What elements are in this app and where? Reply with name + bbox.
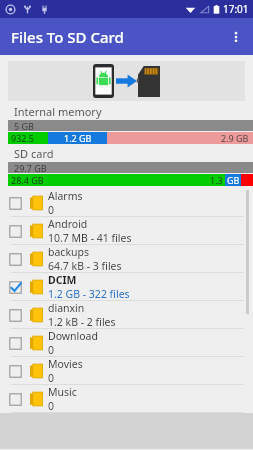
staticText: Movies xyxy=(48,357,83,371)
staticText: Music xyxy=(48,385,77,399)
button[interactable]: Select DCIM xyxy=(0,273,253,301)
staticText: 0 xyxy=(48,371,55,384)
staticText: Internal memory xyxy=(14,104,102,119)
staticText: Download xyxy=(48,329,98,343)
button[interactable]: Select DCIM xyxy=(4,276,26,298)
staticText: dianxin xyxy=(48,301,85,315)
staticText: 64.7 kB - 3 files xyxy=(48,259,122,272)
staticText: 1.2 GB - 322 files xyxy=(48,287,130,300)
staticText: 0 xyxy=(48,343,55,356)
staticText: 0 xyxy=(48,399,55,412)
staticText: Alarms xyxy=(48,189,83,203)
staticText: Android xyxy=(48,217,88,231)
staticText: Files To SD Card xyxy=(11,27,124,47)
button[interactable]: Select Music xyxy=(4,388,26,410)
button[interactable]: More options xyxy=(219,20,253,54)
button[interactable]: Select Alarms xyxy=(4,192,26,214)
staticText: 17:01 xyxy=(223,2,249,16)
button[interactable]: Select backups xyxy=(0,245,253,273)
staticText: 932.5 MB xyxy=(11,132,48,144)
staticText: backups xyxy=(48,245,89,259)
button[interactable]: Select Android xyxy=(0,217,253,245)
staticText: 28.4 GB xyxy=(11,174,44,186)
button[interactable]: Select Movies xyxy=(0,357,253,385)
button[interactable]: Select Movies xyxy=(4,360,26,382)
staticText: GB xyxy=(227,174,240,186)
staticText: DCIM xyxy=(48,273,77,287)
button[interactable]: Select Alarms xyxy=(0,189,253,217)
staticText: 1.2 GB xyxy=(64,132,92,144)
staticText: 0 xyxy=(48,203,55,216)
staticText: 2.9 GB xyxy=(221,132,249,144)
button[interactable]: Select dianxin xyxy=(0,301,253,329)
button[interactable]: Select Music xyxy=(0,385,253,413)
staticText: SD card xyxy=(14,146,54,161)
staticText: 5 GB xyxy=(14,120,34,131)
button[interactable]: Select Download xyxy=(0,329,253,357)
staticText: 29.7 GB xyxy=(14,162,47,173)
button[interactable]: Copy files from phone to SD card xyxy=(8,61,245,101)
staticText: 10.7 MB - 41 files xyxy=(48,231,132,244)
staticText: 1.2 kB - 2 files xyxy=(48,315,116,328)
staticText: 1.3 xyxy=(210,174,223,186)
button[interactable]: Select dianxin xyxy=(4,304,26,326)
button[interactable]: Select backups xyxy=(4,248,26,270)
button[interactable]: Select Download xyxy=(4,332,26,354)
button[interactable]: Select Android xyxy=(4,220,26,242)
